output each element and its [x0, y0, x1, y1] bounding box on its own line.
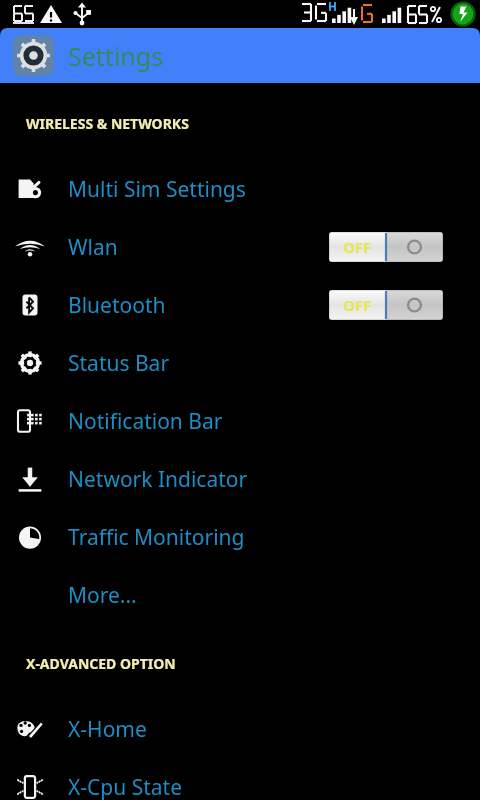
staticText: Network Indicator — [68, 465, 248, 494]
staticText: X-Cpu State — [68, 773, 183, 800]
staticText: WIRELESS & NETWORKS — [26, 114, 189, 133]
button[interactable]: X-Cpu State — [0, 758, 480, 800]
staticText: OFF — [343, 237, 372, 257]
button[interactable]: X-Home — [0, 700, 480, 758]
button[interactable]: Multi Sim Settings — [0, 160, 480, 218]
staticText: Status Bar — [68, 349, 170, 378]
button[interactable]: Network Indicator — [0, 450, 480, 508]
button[interactable]: Bluetooth — [0, 276, 480, 334]
button[interactable]: More... — [0, 566, 480, 624]
staticText: Traffic Monitoring — [68, 523, 245, 552]
staticText: Wlan — [68, 233, 118, 262]
staticText: Settings — [68, 39, 164, 73]
staticText: Bluetooth — [68, 291, 166, 320]
staticText: Multi Sim Settings — [68, 175, 246, 204]
staticText: Notification Bar — [68, 407, 223, 436]
button[interactable]: Toggle, off — [329, 232, 443, 262]
button[interactable]: Settings — [0, 28, 480, 83]
staticText: X-Home — [68, 715, 147, 744]
button[interactable]: Wlan — [0, 218, 480, 276]
button[interactable]: Notification Bar — [0, 392, 480, 450]
button[interactable]: Toggle, off — [329, 290, 443, 320]
button[interactable]: Traffic Monitoring — [0, 508, 480, 566]
staticText: More... — [68, 581, 137, 610]
button[interactable]: Status Bar — [0, 334, 480, 392]
staticText: X-ADVANCED OPTION — [26, 654, 176, 673]
staticText: OFF — [343, 295, 372, 315]
